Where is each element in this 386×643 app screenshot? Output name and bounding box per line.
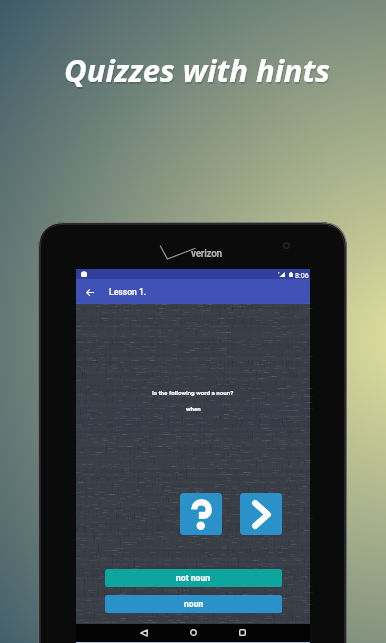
button[interactable]: Home xyxy=(183,624,204,641)
staticText: Lesson 1. xyxy=(109,287,147,297)
staticText: noun xyxy=(184,599,204,609)
button[interactable]: Show hint xyxy=(180,493,222,535)
staticText: Is the following word a noun? xyxy=(152,389,234,396)
staticText: not noun xyxy=(176,573,211,583)
button[interactable]: Recent apps xyxy=(232,624,253,641)
button[interactable]: noun xyxy=(105,595,282,613)
staticText: Quizzes with hints xyxy=(64,49,330,91)
staticText: Quizzes with hints xyxy=(65,51,331,93)
button[interactable]: Navigate up xyxy=(76,279,310,304)
button[interactable]: not noun xyxy=(105,569,282,587)
staticText: 8:06 xyxy=(295,271,309,279)
staticText: verizon xyxy=(191,248,222,260)
button[interactable]: Next question xyxy=(240,493,282,535)
button[interactable]: Back xyxy=(133,624,154,641)
button[interactable]: Navigate up xyxy=(79,281,101,303)
staticText: when xyxy=(186,405,201,412)
